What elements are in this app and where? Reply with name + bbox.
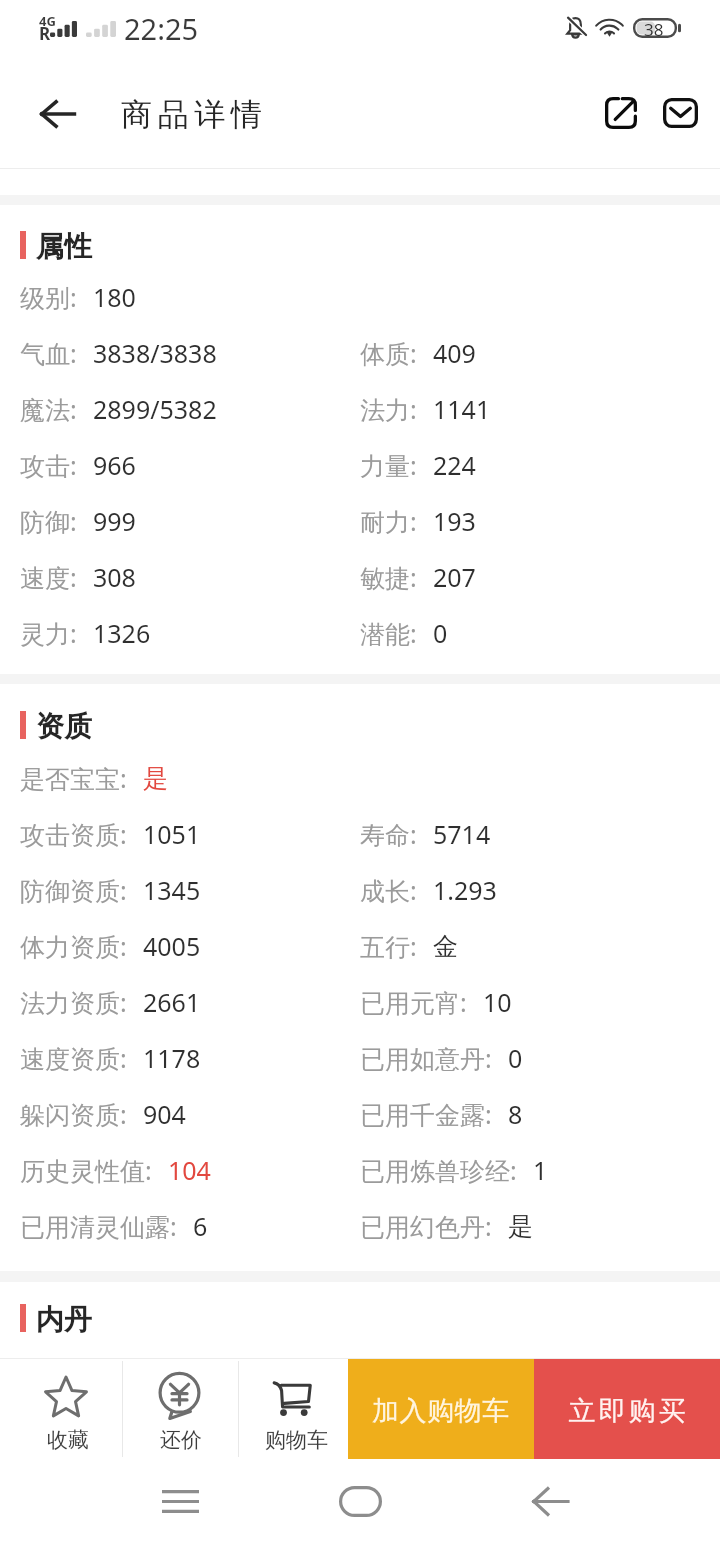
other: Silent mode [567, 17, 584, 39]
staticText: 224 [433, 448, 476, 482]
staticText: 商品详情 [121, 95, 268, 134]
staticText: 1178 [143, 1041, 201, 1075]
staticText: 38 [644, 18, 664, 41]
staticText: 180 [93, 280, 136, 314]
staticText: 五行: [360, 929, 417, 963]
staticText: 4005 [143, 929, 201, 963]
staticText: 成长: [360, 873, 417, 907]
staticText: 308 [93, 560, 136, 594]
staticText: 立即购买 [567, 1394, 687, 1428]
staticText: 是否宝宝: [20, 761, 127, 795]
staticText: 已用千金露: [360, 1097, 492, 1131]
button[interactable]: Share [592, 74, 649, 152]
staticText: 2899/5382 [93, 392, 217, 426]
staticText: 904 [143, 1097, 186, 1131]
staticText: 收藏 [47, 1427, 89, 1453]
staticText: 1326 [93, 616, 151, 650]
staticText: 级别: [20, 280, 77, 314]
button[interactable]: 还价 [123, 1359, 238, 1459]
staticText: 966 [93, 448, 136, 482]
staticText: 409 [433, 336, 476, 370]
staticText: 0 [433, 616, 448, 650]
staticText: 灵力: [20, 616, 77, 650]
staticText: 104 [168, 1153, 211, 1187]
staticText: 0 [508, 1041, 523, 1075]
staticText: 207 [433, 560, 476, 594]
staticText: 速度: [20, 560, 77, 594]
button[interactable]: Back [21, 73, 93, 155]
staticText: 魔法: [20, 392, 77, 426]
button[interactable]: 加入购物车 [348, 1359, 534, 1459]
staticText: 寿命: [360, 817, 417, 851]
staticText: 已用如意丹: [360, 1041, 492, 1075]
staticText: 敏捷: [360, 560, 417, 594]
staticText: 1345 [143, 873, 201, 907]
button[interactable]: Messages [652, 74, 709, 152]
other: Wi-Fi [596, 18, 623, 37]
staticText: 已用幻色丹: [360, 1209, 492, 1243]
staticText: 还价 [160, 1427, 202, 1453]
button[interactable]: 立即购买 [534, 1359, 720, 1459]
staticText: 1141 [433, 392, 491, 426]
staticText: 999 [93, 504, 136, 538]
staticText: 5714 [433, 817, 491, 851]
staticText: 耐力: [360, 504, 417, 538]
staticText: 1.293 [433, 873, 497, 907]
staticText: 属性 [36, 229, 92, 264]
button[interactable]: Home [300, 1459, 420, 1544]
button[interactable]: 内丹 [0, 1287, 720, 1349]
button[interactable]: Recent apps [120, 1459, 240, 1544]
staticText: 气血: [20, 336, 77, 370]
staticText: 4G [39, 12, 56, 30]
staticText: 10 [483, 985, 512, 1019]
staticText: 体力资质: [20, 929, 127, 963]
button[interactable]: 购物车 [239, 1359, 348, 1459]
staticText: 速度资质: [20, 1041, 127, 1075]
staticText: R [39, 22, 51, 45]
staticText: 是 [508, 1211, 533, 1242]
staticText: 3838/3838 [93, 336, 217, 370]
staticText: 攻击资质: [20, 817, 127, 851]
staticText: 2661 [143, 985, 201, 1019]
staticText: 力量: [360, 448, 417, 482]
staticText: 已用清灵仙露: [20, 1209, 177, 1243]
staticText: 攻击: [20, 448, 77, 482]
staticText: 1051 [143, 817, 201, 851]
staticText: 体质: [360, 336, 417, 370]
staticText: 已用元宵: [360, 985, 467, 1019]
button[interactable]: 属性 [0, 214, 720, 276]
staticText: 22:25 [124, 9, 199, 48]
staticText: 防御: [20, 504, 77, 538]
staticText: 躲闪资质: [20, 1097, 127, 1131]
staticText: 1 [533, 1153, 548, 1187]
staticText: 6 [193, 1209, 208, 1243]
staticText: 购物车 [265, 1427, 328, 1453]
staticText: 法力资质: [20, 985, 127, 1019]
staticText: 金 [433, 931, 458, 962]
staticText: 8 [508, 1097, 523, 1131]
staticText: 内丹 [36, 1302, 92, 1337]
button[interactable]: 收藏 [0, 1359, 122, 1459]
staticText: 资质 [36, 709, 92, 744]
button[interactable]: Back [490, 1459, 610, 1544]
other: Battery 38 percent [633, 18, 681, 46]
staticText: 历史灵性值: [20, 1153, 152, 1187]
staticText: 防御资质: [20, 873, 127, 907]
staticText: 已用炼兽珍经: [360, 1153, 517, 1187]
staticText: 193 [433, 504, 476, 538]
staticText: 潜能: [360, 616, 417, 650]
staticText: 法力: [360, 392, 417, 426]
button[interactable]: 资质 [0, 694, 720, 756]
staticText: 是 [143, 763, 168, 794]
staticText: 加入购物车 [372, 1394, 510, 1428]
